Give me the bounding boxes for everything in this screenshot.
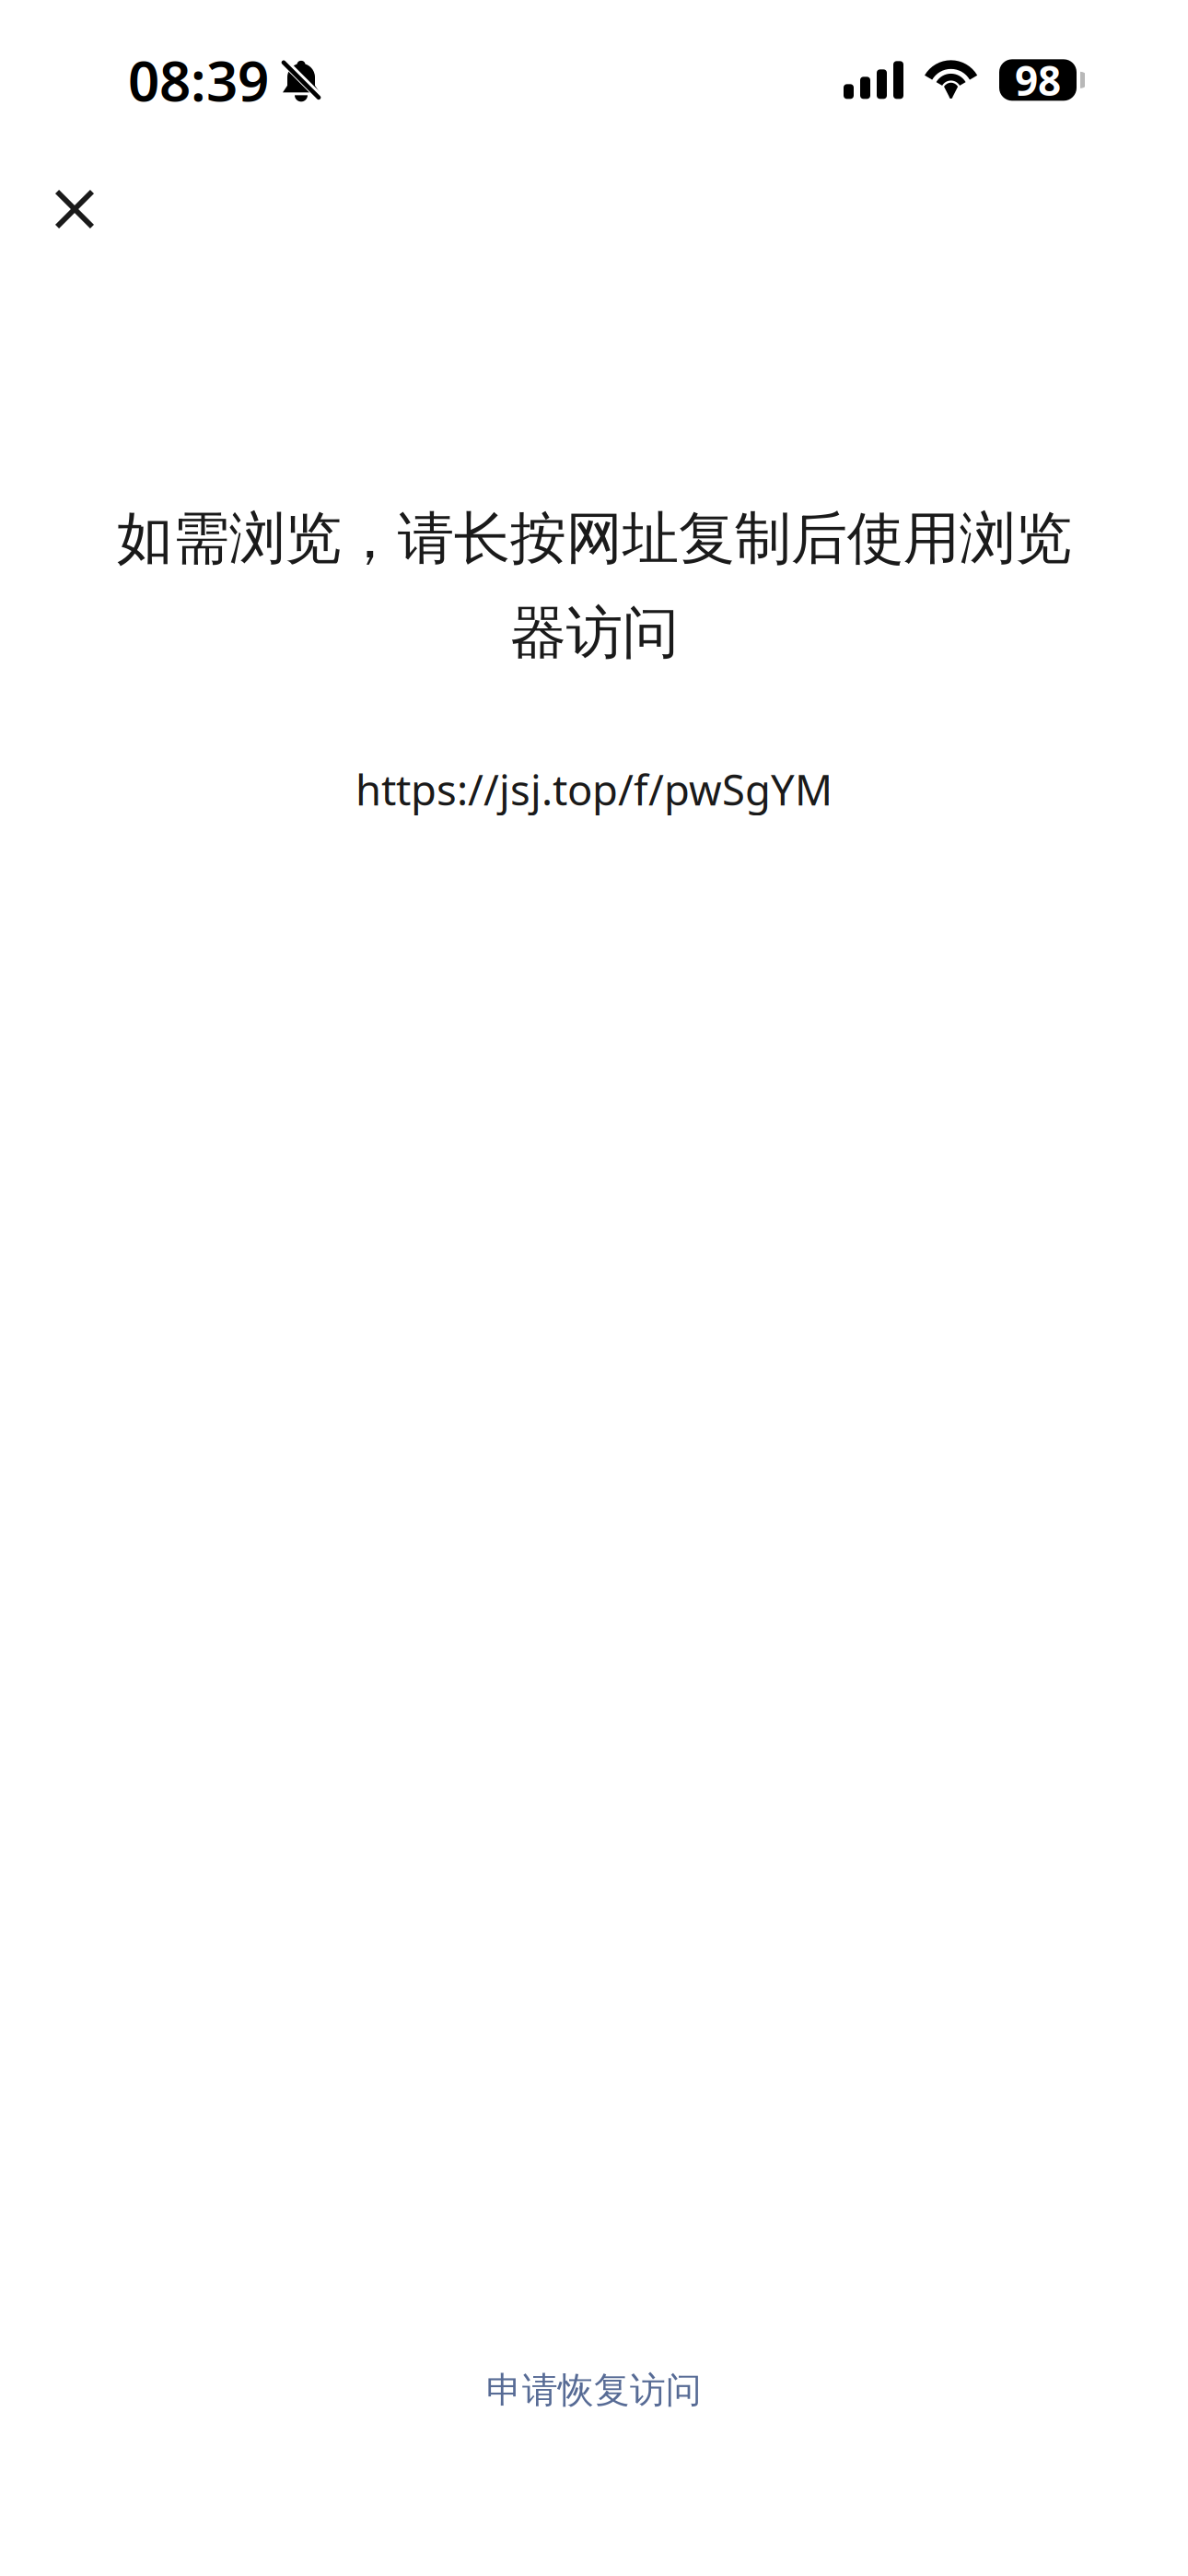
staticText: 申请恢复访问: [486, 2368, 702, 2412]
staticText: 08:39: [128, 43, 269, 117]
button[interactable]: 申请恢复访问: [431, 2344, 757, 2436]
staticText: 98: [1015, 53, 1061, 107]
staticText: 如需浏览，请长按网址复制后使用浏览器访问: [116, 504, 1072, 668]
button[interactable]: Close: [18, 157, 131, 262]
staticText: https://jsj.top/f/pwSgYM: [355, 762, 833, 817]
